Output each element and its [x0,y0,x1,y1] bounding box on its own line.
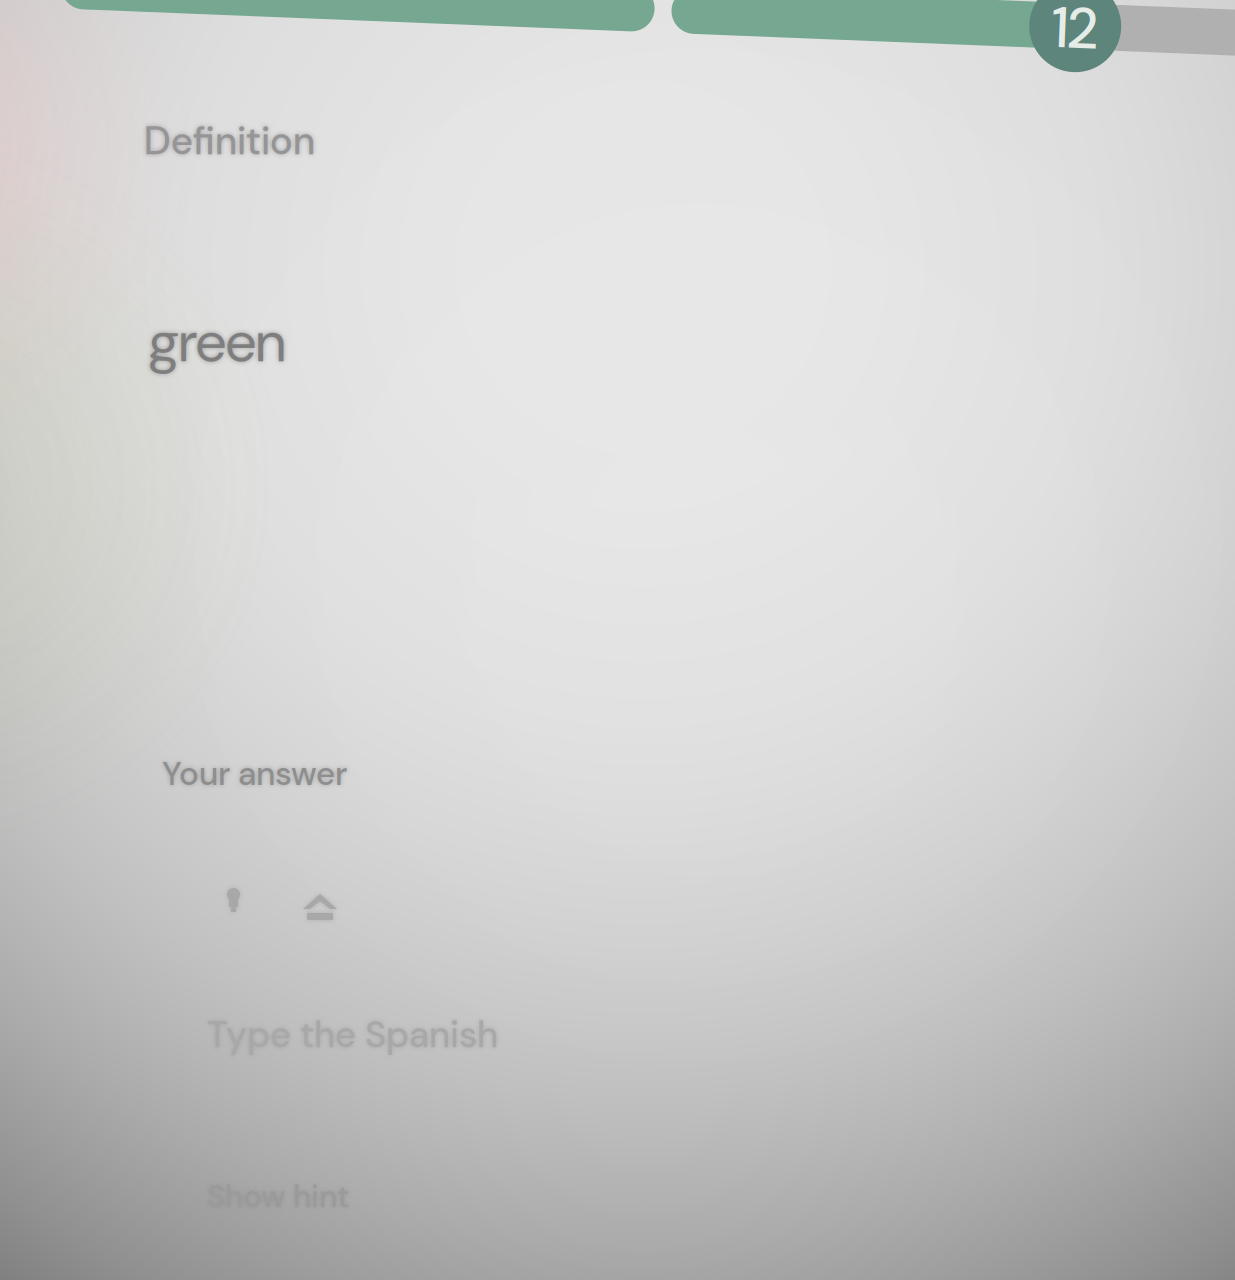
staticText: Definition [144,116,315,166]
button[interactable]: Your answer [162,752,347,795]
button[interactable]: Show hint [207,1176,350,1217]
staticText: Your answer [162,752,347,795]
staticText: 12 [1054,0,1100,22]
button[interactable]: Shift [303,894,337,920]
staticText: green [148,305,285,379]
button[interactable]: Dictate [224,888,241,913]
staticText: Type the Spanish [207,1011,498,1059]
staticText: Show hint [207,1176,350,1217]
